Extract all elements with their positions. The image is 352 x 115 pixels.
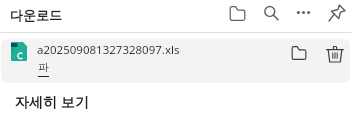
staticText: 다운로드 — [10, 7, 62, 23]
button[interactable]: 파일 열기 — [38, 60, 49, 77]
button[interactable]: Delete — [320, 39, 350, 69]
button[interactable]: More options — [288, 0, 319, 28]
button[interactable]: Search — [256, 0, 287, 29]
button[interactable]: Pin — [321, 0, 352, 28]
button[interactable]: Folder — [222, 0, 253, 29]
staticText: 파일 열기 — [38, 60, 49, 74]
button[interactable]: a202509081327328097.xls — [1, 39, 350, 83]
button[interactable]: 자세히 보기 — [0, 88, 352, 115]
button[interactable]: Open folder — [285, 39, 313, 67]
staticText: 자세히 보기 — [15, 92, 89, 111]
staticText: a202509081327328097.xls — [37, 42, 180, 58]
